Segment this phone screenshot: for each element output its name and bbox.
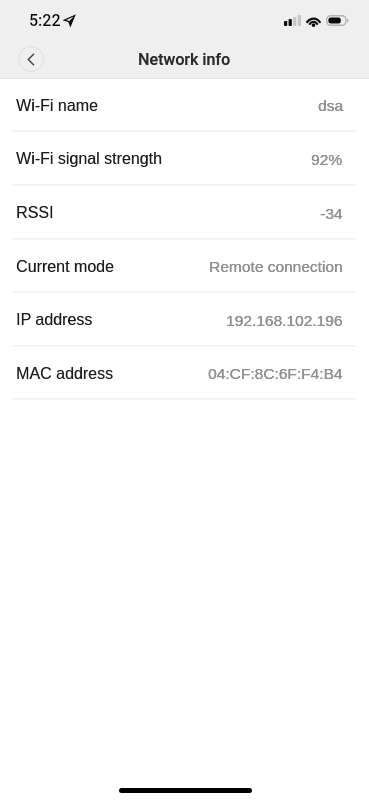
staticText: 192.168.102.196 [226,312,343,329]
staticText: 5:22 [29,11,61,30]
staticText: MAC address [16,365,113,383]
staticText: -34 [320,205,343,222]
staticText: dsa [318,97,343,114]
staticText: MAC address [16,365,113,383]
staticText: RSSI [16,204,54,222]
button[interactable]: Wi-Fi signal strength [0,132,369,186]
staticText: Wi-Fi name [16,97,98,115]
button[interactable]: IP address [0,293,369,347]
staticText: IP address [16,311,93,329]
staticText: Wi-Fi signal strength [16,150,162,168]
button[interactable]: RSSI [0,186,369,240]
staticText: IP address [16,311,93,329]
staticText: 04:CF:8C:6F:F4:B4 [208,365,343,382]
staticText: 92% [311,151,343,168]
staticText: -34 [320,205,343,222]
staticText: 92% [311,151,343,168]
staticText: Wi-Fi signal strength [16,150,162,168]
staticText: Wi-Fi name [16,97,98,115]
button[interactable]: Wi-Fi name [0,79,369,132]
staticText: dsa [318,97,343,114]
staticText: Current mode [16,258,114,276]
staticText: Current mode [16,258,114,276]
staticText: 192.168.102.196 [226,312,343,329]
button[interactable]: Back [18,46,44,72]
staticText: Network info [138,50,231,69]
staticText: Remote connection [209,258,343,275]
staticText: Remote connection [209,258,343,275]
staticText: RSSI [16,204,54,222]
staticText: Network info [138,50,231,69]
button[interactable]: Current mode [0,240,369,293]
staticText: 04:CF:8C:6F:F4:B4 [208,365,343,382]
button[interactable]: MAC address [0,347,369,400]
